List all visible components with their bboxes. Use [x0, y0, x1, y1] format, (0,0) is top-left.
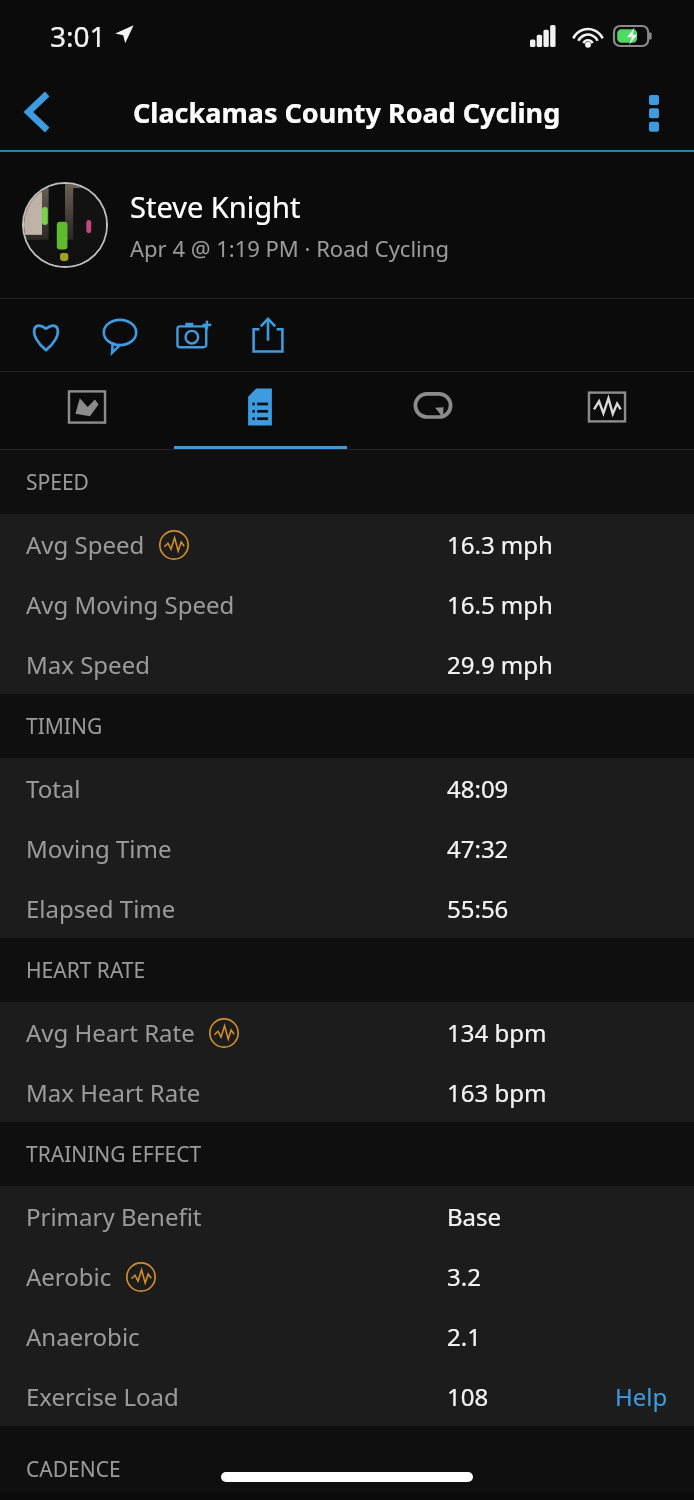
staticText: Avg Speed	[26, 528, 145, 561]
button[interactable]: More options	[622, 80, 686, 144]
button[interactable]: Avg Heart Rate	[0, 1002, 694, 1062]
button[interactable]: Steve Knight	[22, 152, 694, 298]
staticText: 55:56	[447, 892, 509, 925]
button[interactable]: Exercise Load	[0, 1366, 694, 1426]
staticText: Clackamas County Road Cycling	[133, 94, 561, 131]
staticText: TIMING	[26, 712, 103, 741]
staticText: 163 bpm	[447, 1076, 547, 1109]
staticText: Steve Knight	[130, 187, 301, 226]
button[interactable]: Add photo	[170, 309, 218, 361]
staticText: Aerobic	[26, 1260, 112, 1293]
button[interactable]: Laps	[346, 372, 520, 450]
button[interactable]: Like	[22, 309, 70, 361]
staticText: 134 bpm	[447, 1016, 547, 1049]
staticText: Anaerobic	[26, 1320, 140, 1353]
staticText: 16.3 mph	[447, 528, 553, 561]
button[interactable]: Help	[605, 1374, 678, 1419]
button[interactable]: Moving Time	[0, 818, 694, 878]
staticText: Elapsed Time	[26, 892, 176, 925]
staticText: Max Speed	[26, 648, 150, 681]
button[interactable]: Primary Benefit	[0, 1186, 694, 1246]
staticText: 108	[447, 1380, 489, 1413]
button[interactable]: Aerobic	[0, 1246, 694, 1306]
button[interactable]: Details	[173, 372, 346, 450]
staticText: Moving Time	[26, 832, 172, 865]
staticText: TRAINING EFFECT	[26, 1140, 202, 1169]
button[interactable]: Elapsed Time	[0, 878, 694, 938]
button[interactable]: Max Heart Rate	[0, 1062, 694, 1122]
button[interactable]: Avg Speed	[0, 514, 694, 574]
staticText: CADENCE	[26, 1455, 121, 1484]
button[interactable]: Anaerobic	[0, 1306, 694, 1366]
staticText: Primary Benefit	[26, 1200, 202, 1233]
button[interactable]: Map	[0, 372, 173, 450]
staticText: Apr 4 @ 1:19 PM · Road Cycling	[130, 233, 449, 263]
staticText: 3.2	[447, 1260, 481, 1293]
staticText: 47:32	[447, 832, 509, 865]
staticText: HEART RATE	[26, 956, 146, 985]
staticText: 29.9 mph	[447, 648, 553, 681]
staticText: 16.5 mph	[447, 588, 553, 621]
staticText: 2.1	[447, 1320, 481, 1353]
button[interactable]: Total	[0, 758, 694, 818]
staticText: SPEED	[26, 468, 89, 497]
button[interactable]: Charts	[520, 372, 694, 450]
staticText: Exercise Load	[26, 1380, 179, 1413]
button[interactable]: Share	[244, 309, 292, 361]
button[interactable]: Max Speed	[0, 634, 694, 694]
button[interactable]: Comment	[96, 309, 144, 361]
staticText: Help	[615, 1380, 668, 1413]
staticText: 3:01	[50, 17, 106, 55]
button[interactable]: Avg Moving Speed	[0, 574, 694, 634]
staticText: Avg Moving Speed	[26, 588, 235, 621]
staticText: Max Heart Rate	[26, 1076, 201, 1109]
staticText: Avg Heart Rate	[26, 1016, 195, 1049]
staticText: Base	[447, 1200, 502, 1233]
button[interactable]: Back	[6, 80, 70, 144]
staticText: Total	[26, 772, 81, 805]
staticText: 48:09	[447, 772, 509, 805]
